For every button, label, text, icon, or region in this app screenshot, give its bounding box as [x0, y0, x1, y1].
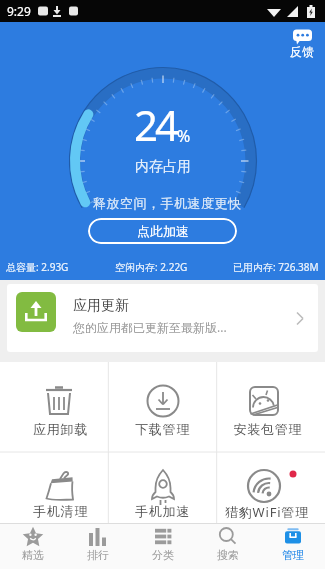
staticText: 内存占用	[135, 158, 191, 176]
staticText: 手机加速	[135, 503, 191, 519]
staticText: 应用更新	[73, 297, 129, 315]
button[interactable]: 反馈	[290, 29, 314, 59]
button[interactable]: 管理	[260, 523, 325, 569]
button[interactable]: 搜索	[195, 523, 260, 569]
button[interactable]: 手机清理	[0, 452, 109, 523]
button[interactable]: 点此加速	[88, 218, 237, 244]
staticText: 空闲内存: 2.22G	[115, 260, 188, 274]
staticText: 精选	[22, 548, 44, 562]
staticText: 搜索	[217, 548, 239, 562]
staticText: %	[177, 125, 191, 147]
staticText: 总容量: 2.93G	[6, 260, 69, 274]
button[interactable]: 手机加速	[109, 452, 217, 523]
button[interactable]: 分类	[130, 523, 195, 569]
staticText: 您的应用都已更新至最新版...	[73, 319, 227, 335]
staticText: 猎豹WiFi管理	[225, 503, 309, 521]
staticText: 24	[134, 96, 177, 153]
staticText: 点此加速	[137, 223, 189, 239]
button[interactable]: 下载管理	[109, 362, 217, 452]
staticText: 排行	[87, 548, 109, 562]
button[interactable]: 猎豹WiFi管理	[217, 452, 325, 523]
staticText: 分类	[152, 548, 174, 562]
staticText: 安装包管理	[233, 421, 302, 437]
staticText: 9:29	[7, 3, 31, 19]
staticText: 反馈	[290, 44, 314, 59]
staticText: 释放空间，手机速度更快	[93, 195, 242, 211]
button[interactable]: 排行	[65, 523, 130, 569]
button[interactable]: 应用更新	[7, 284, 318, 352]
button[interactable]: 应用卸载	[0, 362, 109, 452]
staticText: 手机清理	[33, 503, 89, 519]
staticText: 应用卸载	[33, 421, 89, 437]
staticText: 下载管理	[135, 421, 191, 437]
staticText: 已用内存: 726.38M	[233, 260, 319, 274]
button[interactable]: 精选	[0, 523, 65, 569]
button[interactable]: 安装包管理	[217, 362, 325, 452]
staticText: 管理	[282, 548, 304, 562]
